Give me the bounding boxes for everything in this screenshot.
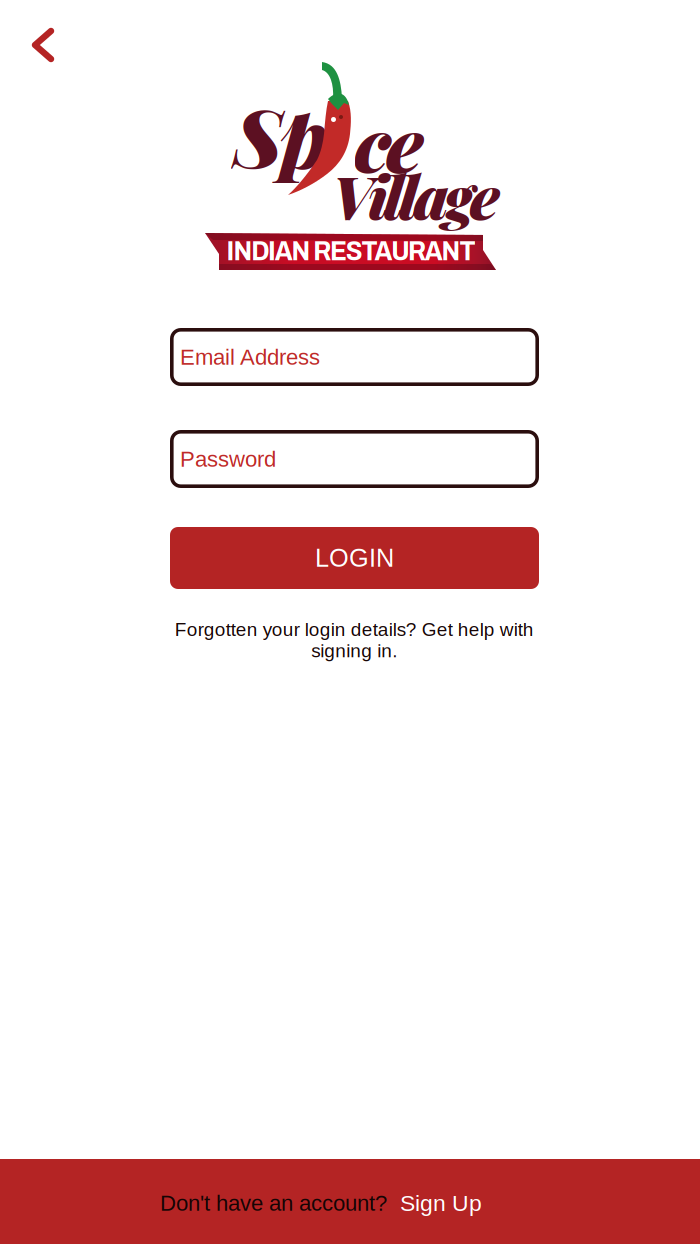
staticText: ce — [354, 92, 423, 192]
button[interactable]: Password — [170, 430, 539, 488]
staticText: Forgotten your login details? Get help w… — [174, 619, 533, 661]
staticText: Don't have an account? — [160, 1191, 387, 1215]
staticText: Village — [332, 155, 500, 235]
staticText: Password — [180, 447, 276, 471]
button[interactable]: Back — [0, 0, 700, 1244]
button[interactable]: LOGIN — [170, 527, 539, 589]
staticText: Sp — [233, 82, 328, 188]
button[interactable]: Email Address — [170, 328, 539, 386]
staticText: INDIAN RESTAURANT — [227, 236, 475, 266]
staticText: Email Address — [180, 345, 320, 369]
button[interactable]: Don't have an account? — [0, 1160, 671, 1244]
staticText: Sign Up — [400, 1190, 482, 1216]
staticText: LOGIN — [315, 544, 394, 572]
